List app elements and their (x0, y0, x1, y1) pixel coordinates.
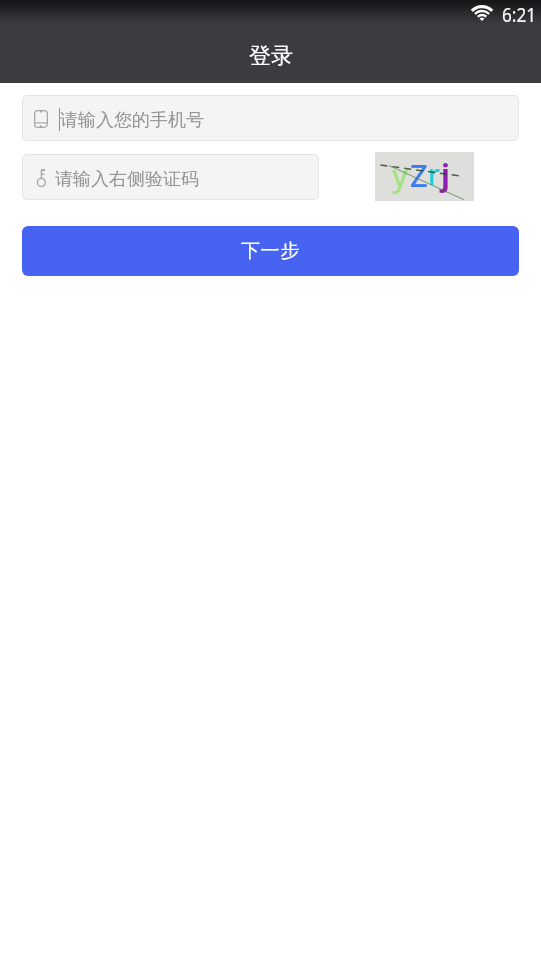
staticText: 请输入右侧验证码 (55, 168, 199, 191)
button[interactable]: 请输入您的手机号 (22, 95, 519, 141)
staticText: 下一步 (241, 239, 300, 263)
button[interactable]: Refresh captcha (375, 152, 474, 201)
button[interactable]: 下一步 (22, 226, 519, 276)
staticText: 登录 (249, 42, 293, 70)
staticText: j (441, 154, 450, 195)
button[interactable]: 请输入右侧验证码 (22, 154, 319, 200)
staticText: Z (410, 154, 428, 196)
staticText: 6:21 (502, 1, 536, 26)
staticText: 请输入您的手机号 (60, 109, 204, 132)
staticText: r (428, 155, 440, 193)
other: Wi-Fi (471, 5, 493, 21)
staticText: y (392, 155, 408, 196)
